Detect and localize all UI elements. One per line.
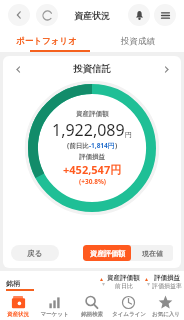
button[interactable]: 評価損益 — [145, 274, 182, 290]
staticText: ポートフォリオ — [16, 36, 77, 47]
button[interactable]: Menu — [154, 4, 176, 26]
staticText: マーケット — [40, 311, 69, 318]
staticText: 前日比 — [115, 282, 133, 290]
button[interactable]: 戻る — [11, 245, 59, 261]
staticText: (前日比 — [67, 141, 89, 150]
button[interactable]: マーケット — [36, 293, 73, 320]
staticText: 評価損益 — [79, 153, 105, 161]
button[interactable]: Back — [8, 4, 30, 26]
staticText: 投資信託 — [73, 63, 111, 75]
button[interactable]: ポートフォリオ — [0, 30, 92, 52]
staticText: 資産評価額 — [76, 110, 109, 118]
staticText: 評価損益率 — [152, 282, 182, 290]
staticText: 銘柄 — [6, 279, 20, 288]
button[interactable]: 投資成績 — [92, 30, 184, 52]
staticText: (+30.8%) — [79, 177, 106, 186]
staticText: 資産状況 — [74, 10, 110, 21]
staticText: 1,922,089 — [52, 119, 125, 141]
staticText: 現在値 — [142, 249, 163, 258]
staticText: 資産評価額 — [107, 274, 140, 282]
button[interactable]: タイムライン — [110, 293, 147, 320]
button[interactable]: Next — [151, 56, 181, 82]
staticText: 資産状況 — [7, 311, 29, 318]
button[interactable]: Refresh — [36, 4, 58, 26]
button[interactable]: 資産評価額 — [100, 274, 140, 290]
staticText: +452,547円 — [63, 162, 122, 177]
button[interactable]: Notifications — [128, 4, 150, 26]
button[interactable]: Previous — [3, 56, 33, 82]
button[interactable]: お気に入り — [147, 293, 184, 320]
staticText: 円 — [125, 130, 132, 139]
staticText: 評価損益 — [154, 274, 180, 282]
staticText: ) — [115, 141, 118, 150]
staticText: タイムライン — [112, 311, 146, 318]
staticText: お気に入り — [152, 311, 180, 318]
button[interactable]: 資産状況 — [0, 293, 36, 320]
button[interactable]: 現在値 — [131, 245, 173, 261]
button[interactable]: 資産評価額 — [83, 245, 131, 261]
staticText: 銘柄検索 — [81, 311, 103, 318]
button[interactable]: 銘柄検索 — [73, 293, 110, 320]
staticText: 資産評価額 — [90, 249, 125, 258]
staticText: -1,814円 — [89, 141, 115, 150]
staticText: 投資成績 — [121, 36, 155, 47]
staticText: 戻る — [27, 249, 43, 258]
button[interactable]: 銘柄 — [6, 279, 34, 291]
